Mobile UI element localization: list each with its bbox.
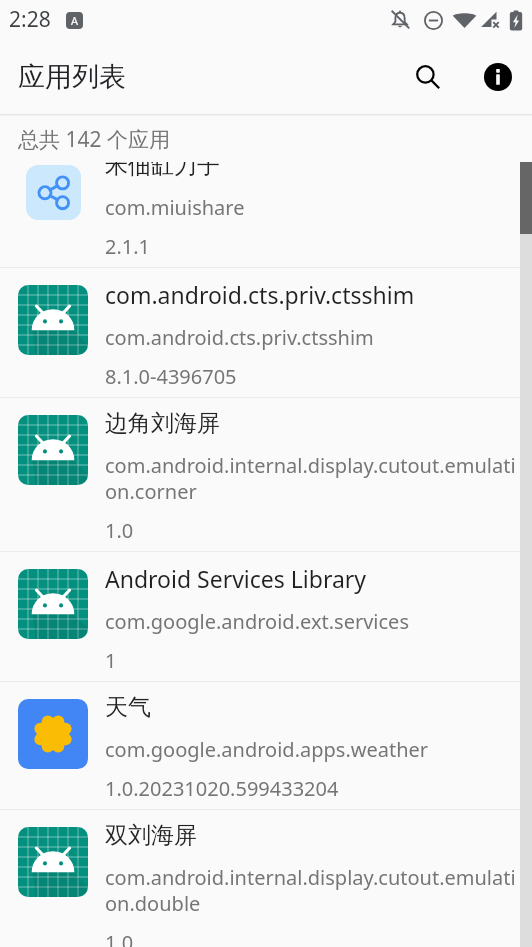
staticText: 1.0	[105, 929, 134, 947]
staticText: com.android.cts.priv.ctsshim	[105, 279, 415, 310]
button[interactable]: Search	[404, 53, 452, 101]
staticText: 总共 142 个应用	[18, 125, 170, 154]
staticText: 边角刘海屏	[105, 409, 220, 438]
staticText: 米佃缸刀子	[105, 162, 220, 180]
staticText: 1	[105, 647, 117, 674]
staticText: com.android.internal.display.cutout.emul…	[105, 864, 516, 917]
button[interactable]: 天气	[0, 682, 532, 809]
staticText: 双刘海屏	[105, 821, 197, 850]
staticText: Android Services Library	[105, 563, 367, 594]
staticText: A	[71, 13, 79, 28]
button[interactable]: 双刘海屏	[0, 810, 532, 947]
staticText: 应用列表	[18, 60, 126, 94]
button[interactable]: com.android.cts.priv.ctsshim	[0, 268, 532, 397]
button[interactable]: 边角刘海屏	[0, 398, 532, 551]
staticText: 1.0.20231020.599433204	[105, 775, 339, 802]
button[interactable]: Android Services Library	[0, 552, 532, 681]
button[interactable]: 米佃缸刀子	[0, 162, 532, 267]
staticText: 2.1.1	[105, 233, 151, 260]
staticText: com.google.android.apps.weather	[105, 736, 429, 763]
staticText: 天气	[105, 693, 151, 722]
staticText: 2:28	[9, 5, 51, 34]
staticText: com.miuishare	[105, 194, 245, 221]
staticText: com.google.android.ext.services	[105, 608, 409, 635]
staticText: 1.0	[105, 517, 134, 544]
staticText: com.android.internal.display.cutout.emul…	[105, 452, 516, 505]
button[interactable]: Info	[474, 53, 522, 101]
staticText: 8.1.0-4396705	[105, 363, 237, 390]
staticText: com.android.cts.priv.ctsshim	[105, 324, 374, 351]
